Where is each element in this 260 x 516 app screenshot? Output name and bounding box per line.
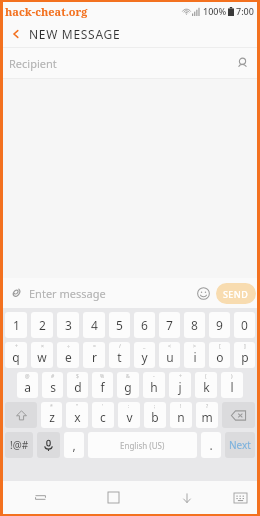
- staticText: ,: [72, 437, 76, 453]
- button[interactable]: Hide keyboard: [150, 481, 223, 514]
- staticText: ]: [244, 343, 246, 350]
- staticText: w: [37, 349, 47, 365]
- staticText: 7: [166, 317, 173, 333]
- button[interactable]: Back: [3, 20, 29, 47]
- staticText: 0: [241, 317, 248, 333]
- button[interactable]: ": [66, 402, 88, 428]
- staticText: Enter message: [29, 286, 190, 301]
- staticText: ": [76, 403, 79, 410]
- button[interactable]: :: [118, 402, 140, 428]
- staticText: 9: [216, 317, 223, 333]
- button[interactable]: Add recipient from contacts: [227, 48, 257, 78]
- button[interactable]: ?: [196, 402, 218, 428]
- button[interactable]: 4: [83, 312, 105, 338]
- staticText: y: [141, 349, 148, 365]
- button[interactable]: ,: [64, 432, 84, 458]
- button[interactable]: *: [41, 402, 62, 428]
- staticText: ': [102, 403, 104, 410]
- button[interactable]: -: [143, 372, 165, 398]
- button[interactable]: Attach file: [3, 280, 29, 306]
- staticText: *: [50, 403, 53, 410]
- button[interactable]: <: [159, 342, 180, 368]
- staticText: English (US): [120, 440, 165, 451]
- button[interactable]: 9: [209, 312, 230, 338]
- staticText: 6: [141, 317, 148, 333]
- staticText: 2: [39, 317, 46, 333]
- button[interactable]: Shift: [5, 402, 37, 428]
- staticText: %: [100, 373, 105, 380]
- staticText: p: [241, 349, 249, 365]
- staticText: Next: [229, 438, 251, 452]
- staticText: _: [143, 343, 146, 350]
- button[interactable]: &: [117, 372, 139, 398]
- staticText: 4: [91, 317, 98, 333]
- staticText: 3: [65, 317, 72, 333]
- staticText: i: [193, 349, 197, 365]
- staticText: ): [231, 373, 233, 380]
- button[interactable]: Change keyboard: [223, 481, 257, 514]
- staticText: g: [124, 379, 132, 395]
- button[interactable]: !@#: [5, 432, 33, 458]
- staticText: l: [230, 379, 234, 395]
- staticText: !@#: [10, 438, 29, 452]
- button[interactable]: ]: [234, 342, 255, 368]
- button[interactable]: English (US): [88, 432, 197, 458]
- button[interactable]: !: [170, 402, 192, 428]
- button[interactable]: 1: [5, 312, 27, 338]
- button[interactable]: +: [5, 342, 27, 368]
- staticText: ×: [41, 343, 44, 350]
- staticText: z: [49, 409, 55, 425]
- button[interactable]: 3: [57, 312, 79, 338]
- staticText: /: [119, 343, 121, 350]
- button[interactable]: ×: [31, 342, 53, 368]
- button[interactable]: $: [67, 372, 88, 398]
- button[interactable]: 8: [184, 312, 205, 338]
- button[interactable]: ): [221, 372, 243, 398]
- staticText: 1: [13, 317, 20, 333]
- button[interactable]: >: [184, 342, 205, 368]
- staticText: .: [209, 437, 213, 453]
- staticText: ;: [154, 403, 156, 410]
- button[interactable]: Insert emoji: [190, 280, 216, 306]
- staticText: ?: [206, 403, 209, 410]
- button[interactable]: SEND: [216, 283, 256, 304]
- staticText: j: [178, 379, 182, 395]
- staticText: ÷: [67, 343, 70, 350]
- button[interactable]: 5: [109, 312, 130, 338]
- staticText: +: [179, 373, 182, 380]
- button[interactable]: (: [195, 372, 217, 398]
- button[interactable]: Backspace: [222, 402, 255, 428]
- staticText: h: [150, 379, 158, 395]
- button[interactable]: [: [209, 342, 230, 368]
- button[interactable]: ;: [144, 402, 166, 428]
- button[interactable]: +: [169, 372, 191, 398]
- button[interactable]: ÷: [57, 342, 79, 368]
- staticText: =: [93, 343, 96, 350]
- button[interactable]: .: [201, 432, 221, 458]
- button[interactable]: #: [42, 372, 63, 398]
- button[interactable]: %: [92, 372, 113, 398]
- button[interactable]: ': [92, 402, 114, 428]
- staticText: v: [126, 409, 133, 425]
- button[interactable]: _: [134, 342, 155, 368]
- staticText: s: [50, 379, 56, 395]
- staticText: e: [65, 349, 72, 365]
- button[interactable]: Home: [77, 481, 150, 514]
- button[interactable]: Next: [225, 432, 255, 458]
- staticText: !: [180, 403, 182, 410]
- button[interactable]: /: [109, 342, 130, 368]
- button[interactable]: @: [17, 372, 38, 398]
- button[interactable]: 0: [234, 312, 255, 338]
- staticText: r: [92, 349, 97, 365]
- button[interactable]: =: [83, 342, 105, 368]
- staticText: d: [74, 379, 82, 395]
- button[interactable]: Recent apps: [3, 481, 77, 514]
- staticText: NEW MESSAGE: [29, 26, 121, 42]
- button[interactable]: 7: [159, 312, 180, 338]
- staticText: k: [203, 379, 210, 395]
- button[interactable]: 6: [134, 312, 155, 338]
- button[interactable]: 2: [31, 312, 53, 338]
- staticText: 5: [116, 317, 123, 333]
- button[interactable]: Voice input: [37, 432, 60, 458]
- staticText: -: [153, 373, 155, 380]
